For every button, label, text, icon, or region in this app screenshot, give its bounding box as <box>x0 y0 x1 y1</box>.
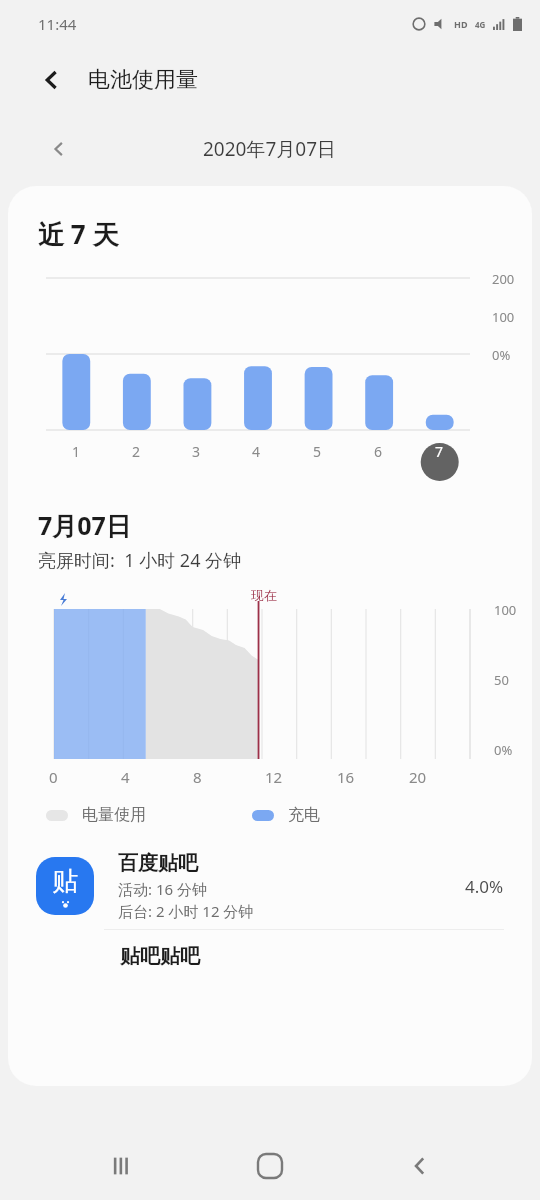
staticText: 5 <box>313 442 322 461</box>
staticText: 1 <box>72 442 81 461</box>
staticText: 8 <box>193 767 202 787</box>
staticText: 电量使用 <box>82 805 146 825</box>
button[interactable]: 贴 <box>8 843 532 929</box>
button[interactable]: Recents <box>90 1136 150 1196</box>
button[interactable]: 贴吧贴吧 <box>8 944 532 969</box>
staticText: 6 <box>374 442 383 461</box>
staticText: 近 7 天 <box>38 216 119 252</box>
button[interactable]: Home <box>240 1136 300 1196</box>
staticText: 现在 <box>251 587 277 603</box>
staticText: 0 <box>49 767 58 787</box>
staticText: 贴吧贴吧 <box>120 944 200 969</box>
staticText: 16 <box>337 767 355 787</box>
staticText: 3 <box>192 442 201 461</box>
staticText: 电池使用量 <box>88 66 198 94</box>
staticText: 0% <box>494 741 513 759</box>
staticText: 2020年7月07日 <box>203 136 337 162</box>
staticText: 12 <box>265 767 283 787</box>
button[interactable]: Previous day <box>40 130 78 168</box>
staticText: 100 <box>494 601 517 619</box>
staticText: 4 <box>252 442 261 461</box>
staticText: 50 <box>494 671 509 689</box>
button[interactable]: Back <box>32 60 72 100</box>
staticText: HD <box>454 18 468 30</box>
staticText: 后台: 2 小时 12 分钟 <box>118 901 254 921</box>
staticText: 100 <box>492 308 515 326</box>
staticText: 4.0% <box>465 875 504 898</box>
staticText: 200 <box>492 270 515 288</box>
staticText: 7 <box>435 442 444 461</box>
staticText: 百度贴吧 <box>118 851 198 876</box>
staticText: 11:44 <box>38 14 77 34</box>
staticText: 4G <box>475 19 486 30</box>
staticText: 0% <box>492 346 511 364</box>
staticText: 充电 <box>288 805 320 825</box>
button[interactable]: Back <box>390 1136 450 1196</box>
staticText: 20 <box>409 767 427 787</box>
staticText: 2 <box>132 442 141 461</box>
staticText: 亮屏时间: 1 小时 24 分钟 <box>38 548 242 573</box>
staticText: 7月07日 <box>38 508 131 542</box>
staticText: 贴 <box>52 865 78 898</box>
staticText: 活动: 16 分钟 <box>118 879 207 899</box>
staticText: 4 <box>121 767 130 787</box>
